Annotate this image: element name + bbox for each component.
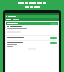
button[interactable]: Order (6, 41, 58, 72)
button[interactable]: App bar (5, 15, 59, 18)
button[interactable]: Tabs (5, 18, 59, 21)
button[interactable]: Order (50, 37, 57, 39)
button[interactable]: Order again (6, 22, 58, 35)
button[interactable]: Order (50, 42, 57, 44)
button[interactable]: Order (6, 36, 58, 40)
